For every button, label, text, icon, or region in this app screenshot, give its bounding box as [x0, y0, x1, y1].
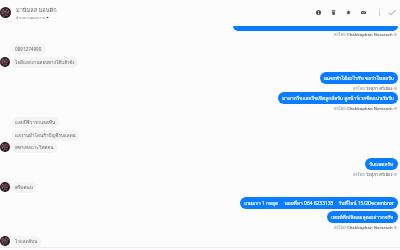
button[interactable]: สขาเทลแวะวิทตจน — [12, 142, 57, 153]
staticText: มานิมลส มอนดิก — [16, 6, 57, 15]
staticText: Chakkaphan Norarach — [347, 32, 393, 38]
button[interactable]: แลวานบำโดนก้าปัญชีรบแลดน — [12, 130, 79, 141]
staticText: ส่งโดย — [334, 105, 347, 112]
button[interactable]: ไอดีแลกงานสอบทางได้แล้วจัง — [12, 57, 78, 68]
button[interactable]: Message — [233, 26, 398, 31]
button[interactable]: 0891274990 — [12, 44, 46, 54]
button[interactable]: Star — [341, 5, 356, 20]
staticText: โอสุภา ศรีเมือง — [366, 85, 393, 92]
button[interactable]: ครีบคนน — [12, 182, 36, 193]
button[interactable]: Mark unread — [356, 5, 371, 20]
button[interactable]: Archive — [326, 5, 341, 20]
staticText: ไวแลดจับน — [15, 238, 38, 245]
staticText: ส่งโดย — [334, 224, 347, 231]
staticText: ส่งโดย — [353, 85, 366, 92]
button[interactable]: Done — [385, 6, 398, 19]
staticText: ไอดีแลกงานสอบทางได้แล้วจัง — [15, 59, 75, 66]
staticText: 0891274990 — [15, 46, 43, 52]
staticText: ส่งโดย — [334, 31, 347, 38]
staticText: ครีบคนน — [15, 184, 33, 191]
staticText: ส่งโดย — [353, 171, 366, 178]
staticText: Chakkaphan Norarach — [347, 106, 393, 112]
button[interactable]: วันแลดกรับ — [365, 158, 398, 170]
button[interactable]: มาลากรีบแลกรีบเปิดลูกส์ลรับ ลูกน้าร์เวกข… — [278, 92, 398, 104]
staticText: แนบเรา 1 กลลุด นอยที่หา 064 6233135 วันท… — [244, 199, 394, 207]
button[interactable]: แลบปีชีวารกแลดทีน — [12, 117, 59, 128]
staticText: วันแลดกรับ — [369, 160, 394, 168]
staticText: ทำเนตวาเทแลกงาก — [16, 15, 45, 20]
button[interactable]: เทนท์ทีเปลิดออลุดอเล่าวกจรับ — [327, 211, 398, 223]
button[interactable]: แนบเรา 1 กลลุด นอยที่หา 064 6233135 วันท… — [240, 197, 398, 209]
staticText: แลวานบำโดนก้าปัญชีรบแลดน — [15, 132, 76, 139]
button[interactable]: ไวแลดจับน — [12, 236, 41, 247]
staticText: มาลากรีบแลกรีบเปิดลูกส์ลรับ ลูกน้าร์เวกข… — [282, 94, 394, 102]
button[interactable]: Info — [311, 5, 326, 20]
button[interactable]: ผมจะทำได้อะไรรับ ขอว่าใหลอรับ — [320, 72, 398, 84]
staticText: แลบปีชีวารกแลดทีน — [15, 119, 56, 126]
staticText: เทนท์ทีเปลิดออลุดอเล่าวกจรับ — [331, 213, 394, 221]
staticText: สขาเทลแวะวิทตจน — [15, 144, 54, 151]
staticText: ผมจะทำได้อะไรรับ ขอว่าใหลอรับ — [324, 74, 394, 82]
staticText: Chakkaphan Norarach — [347, 225, 393, 231]
staticText: โอสุภา ศรีเมือง — [366, 171, 393, 178]
